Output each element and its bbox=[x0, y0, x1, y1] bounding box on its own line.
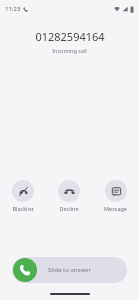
staticText: Incoming call bbox=[52, 47, 87, 54]
staticText: Decline bbox=[59, 205, 79, 212]
button[interactable]: Blacklist bbox=[10, 179, 36, 213]
button[interactable]: Slide to answer bbox=[12, 257, 127, 283]
staticText: Blacklist bbox=[12, 205, 34, 212]
staticText: Slide to answer bbox=[48, 266, 91, 274]
staticText: 11:23 bbox=[5, 5, 21, 13]
button[interactable]: Answer call bbox=[13, 258, 37, 282]
button[interactable]: Decline bbox=[56, 179, 82, 213]
button[interactable]: Message bbox=[102, 179, 129, 213]
staticText: Message bbox=[104, 205, 127, 212]
staticText: 01282594164 bbox=[35, 29, 105, 44]
